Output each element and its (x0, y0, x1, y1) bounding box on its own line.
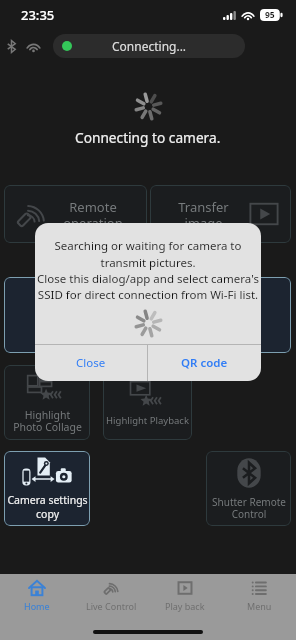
staticText: 23:35 (21, 6, 55, 24)
staticText: Close (76, 355, 106, 371)
button[interactable]: Shutter Remote Control (206, 451, 291, 526)
other: Wi-Fi (26, 41, 41, 52)
staticText: Remote operation (63, 198, 123, 231)
button[interactable]: Play back (148, 579, 222, 612)
staticText: Home (24, 600, 50, 612)
other: Bluetooth (6, 40, 17, 53)
button[interactable]: Photo Collage (150, 277, 291, 353)
button[interactable]: Connecting... (53, 34, 245, 58)
button[interactable]: QR code (148, 345, 261, 381)
staticText: Highlight Playback (106, 414, 189, 427)
staticText: Searching or waiting for camera to trans… (37, 238, 259, 302)
button[interactable]: Geotagging (4, 277, 147, 353)
button[interactable]: Home (0, 579, 74, 612)
button[interactable]: Menu (222, 579, 296, 612)
staticText: Transfer image (178, 198, 229, 231)
staticText: Connecting to camera. (75, 128, 221, 147)
staticText: 95 (265, 9, 275, 21)
button[interactable]: Close (35, 345, 147, 381)
staticText: Camera settings copy (7, 493, 88, 521)
button[interactable]: Highlight Photo Collage (4, 365, 90, 440)
button[interactable]: Highlight Playback (103, 365, 192, 440)
staticText: Connecting... (112, 38, 187, 54)
button[interactable]: Remote operation (4, 185, 147, 243)
staticText: Shutter Remote Control (212, 495, 286, 521)
button[interactable]: Camera settings copy (4, 451, 90, 526)
button[interactable]: Transfer image (150, 185, 291, 243)
staticText: Highlight Photo Collage (13, 408, 82, 434)
staticText: Live Control (86, 600, 137, 612)
staticText: Play back (165, 600, 205, 612)
staticText: Menu (247, 600, 272, 612)
staticText: QR code (181, 355, 228, 371)
button[interactable]: Live Control (74, 579, 148, 612)
